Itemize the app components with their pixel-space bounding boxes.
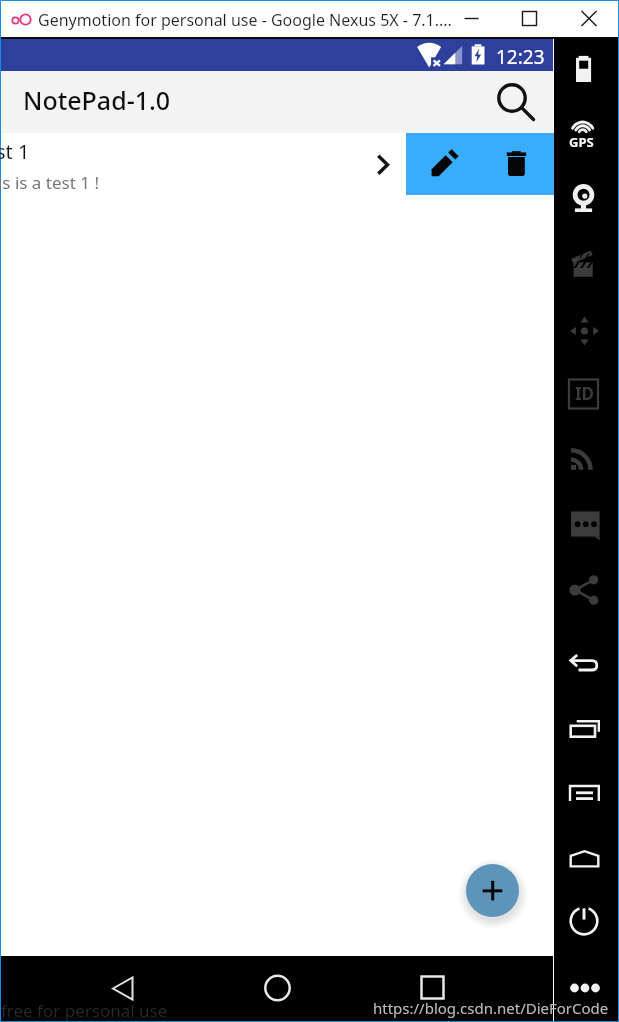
button[interactable]: Tool (554, 835, 614, 883)
button[interactable]: Tool (554, 238, 614, 286)
staticText: Test 1 (0, 138, 30, 165)
button[interactable]: Tool (554, 641, 614, 689)
button[interactable]: Back (101, 966, 145, 1010)
button[interactable]: Delete (480, 133, 554, 195)
button[interactable]: Tool (554, 172, 614, 220)
button[interactable]: Tool (554, 307, 614, 355)
staticText: NotePad-1.0 (23, 83, 171, 117)
button[interactable]: Tool (554, 46, 614, 94)
button[interactable]: Tool (554, 103, 614, 151)
button[interactable]: Maximize (501, 1, 558, 37)
staticText: free for personal use (1, 999, 168, 1022)
button[interactable]: Tool (554, 370, 614, 418)
staticText: This is a test 1 ! (0, 171, 99, 194)
button[interactable]: Tool (554, 705, 614, 753)
staticText: Genymotion for personal use - Google Nex… (38, 9, 452, 31)
button[interactable]: Home (256, 966, 300, 1010)
staticText: https://blog.csdn.net/DieForCode (373, 998, 609, 1018)
button[interactable]: Tool (554, 566, 614, 614)
button[interactable]: Tool (554, 433, 614, 481)
button[interactable]: Tool (554, 964, 614, 1012)
button[interactable]: Minimize (443, 1, 500, 37)
button[interactable]: Edit (406, 133, 480, 195)
button[interactable]: Tool (554, 769, 614, 817)
staticText: 12:23 (496, 44, 545, 70)
button[interactable]: Close (560, 1, 618, 37)
staticText: ID (575, 382, 595, 405)
button[interactable]: Tool (554, 500, 614, 548)
button[interactable]: Add note (466, 864, 519, 917)
button[interactable]: Tool (554, 897, 614, 945)
button[interactable]: Recents (411, 966, 455, 1010)
button[interactable]: Search (485, 71, 539, 132)
staticText: GPS (569, 133, 594, 151)
